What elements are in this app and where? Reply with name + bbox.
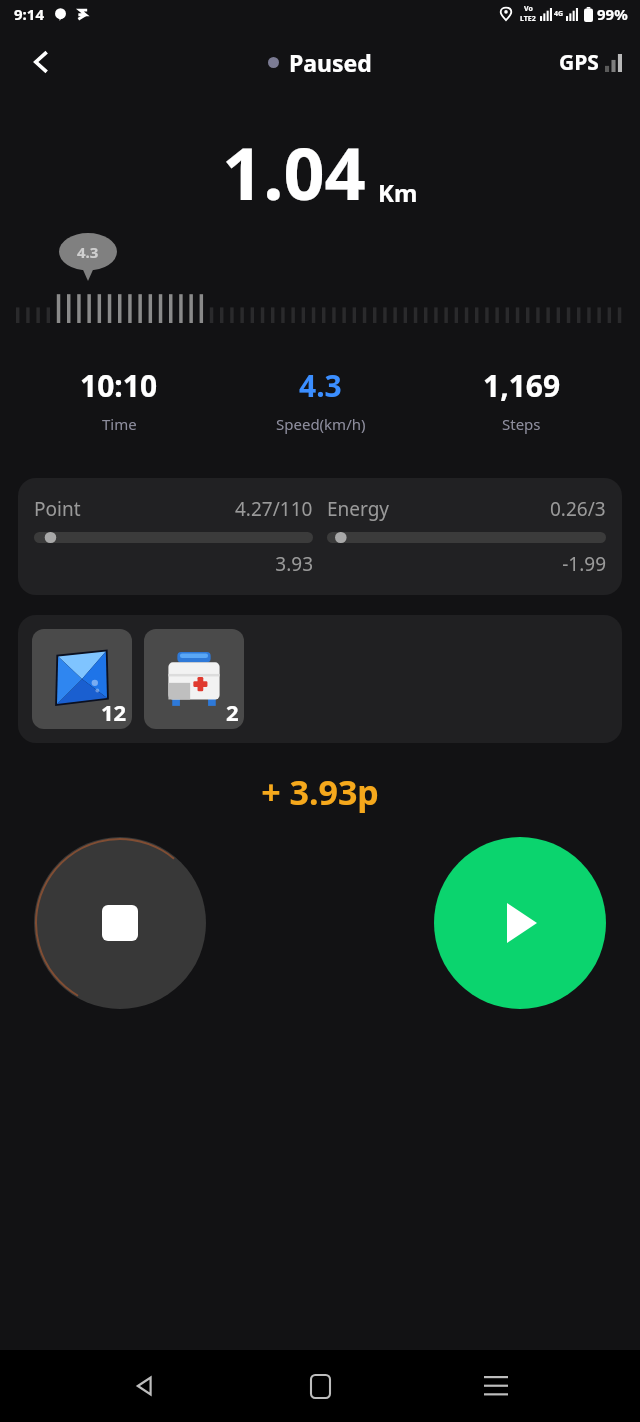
staticText: 99% — [597, 4, 628, 24]
staticText: LTE2 — [520, 14, 536, 24]
button[interactable]: 4.3 — [220, 365, 421, 434]
staticText: Paused — [289, 47, 372, 78]
button[interactable]: Resume — [434, 837, 606, 1009]
staticText: 1,169 — [483, 365, 561, 406]
staticText: Speed(km/h) — [276, 414, 366, 434]
staticText: 4.3 — [77, 242, 99, 262]
staticText: Vo — [524, 4, 533, 14]
staticText: 4.3 — [299, 365, 342, 406]
staticText: Energy — [327, 496, 390, 522]
button[interactable]: GPS signal — [559, 48, 622, 77]
staticText: Km — [378, 176, 418, 209]
button[interactable]: Item x2 — [144, 629, 244, 729]
button[interactable]: Item x12 — [32, 629, 132, 729]
button[interactable]: Point — [18, 478, 622, 595]
staticText: 4G — [554, 9, 564, 19]
staticText: 4.27/110 — [235, 496, 313, 522]
button[interactable]: Home — [288, 1354, 352, 1418]
button[interactable]: 1,169 — [421, 365, 622, 434]
staticText: 1.04 — [222, 123, 366, 221]
button[interactable]: Back — [18, 38, 66, 86]
staticText: -1.99 — [327, 551, 606, 577]
staticText: 3.93 — [34, 551, 313, 577]
staticText: 9:14 — [14, 4, 44, 24]
button[interactable]: 10:10 — [18, 365, 220, 434]
button[interactable]: Stop — [34, 837, 206, 1009]
staticText: Steps — [502, 414, 541, 434]
button[interactable]: Recent apps — [464, 1354, 528, 1418]
staticText: Point — [34, 496, 81, 522]
staticText: + 3.93p — [0, 769, 640, 815]
staticText: 10:10 — [80, 365, 158, 406]
staticText: GPS — [559, 48, 599, 77]
staticText: 12 — [101, 697, 127, 727]
staticText: Time — [102, 414, 137, 434]
button[interactable]: Back — [112, 1354, 176, 1418]
staticText: 2 — [226, 697, 239, 727]
staticText: 0.26/3 — [550, 496, 606, 522]
